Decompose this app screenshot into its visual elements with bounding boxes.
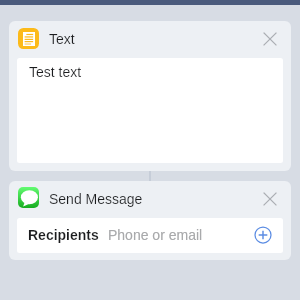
staticText: Test text [29, 64, 82, 80]
button[interactable]: Test text [17, 58, 283, 163]
staticText: Text [49, 31, 75, 47]
button[interactable] [9, 21, 291, 171]
button[interactable]: Remove action [258, 187, 282, 211]
staticText: Send Message [49, 191, 143, 207]
button[interactable]: Remove action [258, 27, 282, 51]
staticText: Phone or email [108, 227, 203, 243]
staticText: Recipients [28, 227, 99, 243]
button[interactable]: Add recipient [253, 225, 273, 245]
button[interactable]: Recipients [17, 218, 283, 253]
button[interactable] [9, 181, 291, 260]
